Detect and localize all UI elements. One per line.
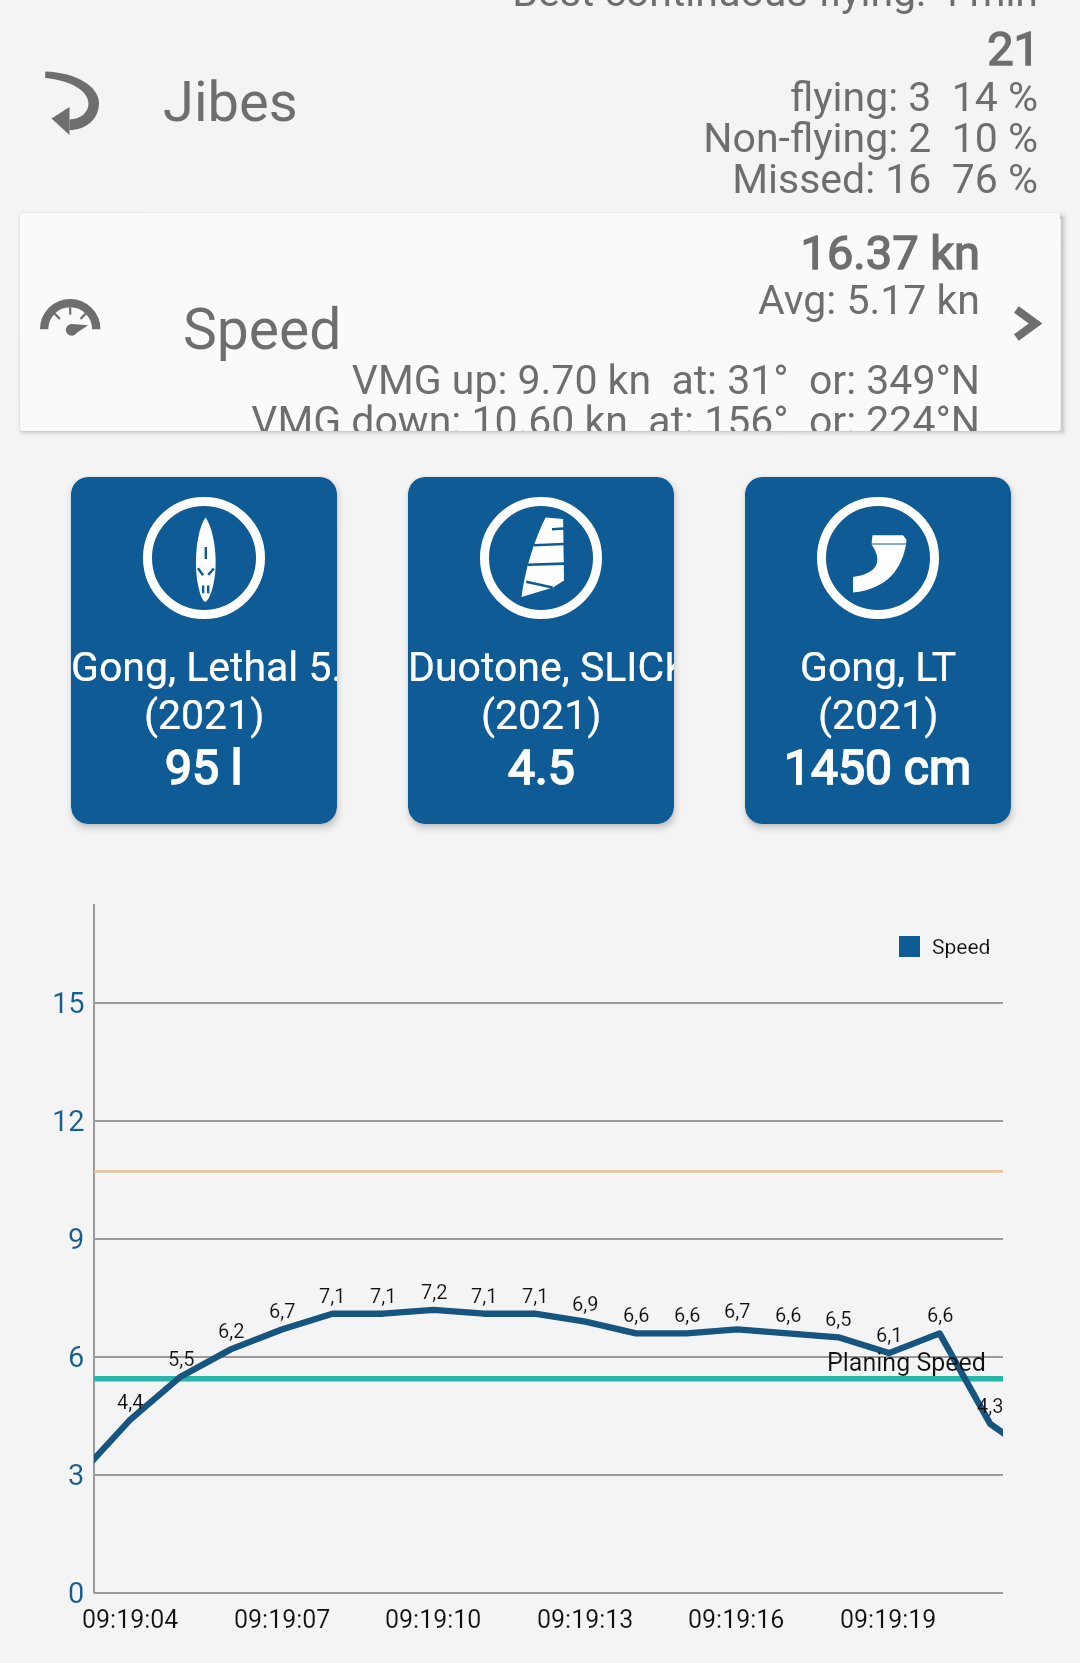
- staticText: VMG up: 9.70 kn at: 31° or: 349°N: [20, 356, 980, 404]
- button[interactable]: Duotone, SLICK: [408, 477, 674, 824]
- staticText: Best continuous flying: 4 min: [0, 0, 1038, 16]
- staticText: 7,1: [522, 1284, 549, 1307]
- staticText: 15: [52, 986, 85, 1020]
- staticText: 95 l: [165, 739, 243, 795]
- staticText: 4,3: [977, 1394, 1004, 1417]
- staticText: 6,6: [927, 1303, 954, 1326]
- staticText: Gong, LT: [800, 643, 957, 691]
- staticText: Speed: [183, 296, 342, 363]
- staticText: 3: [68, 1458, 85, 1492]
- staticText: 09:19:19: [840, 1605, 937, 1634]
- staticText: 5,5: [168, 1347, 195, 1370]
- staticText: 12: [52, 1104, 85, 1138]
- staticText: flying: 3 14 %: [0, 73, 1038, 121]
- button[interactable]: Speed: [20, 213, 1060, 431]
- staticText: 6,6: [623, 1303, 650, 1326]
- staticText: 6,7: [724, 1299, 751, 1322]
- staticText: Jibes: [163, 69, 298, 135]
- staticText: 0: [68, 1576, 85, 1610]
- staticText: (2021): [818, 691, 939, 739]
- staticText: 4.5: [508, 739, 575, 795]
- staticText: 6,5: [825, 1307, 852, 1330]
- staticText: Gong, Lethal 5.1: [71, 643, 337, 691]
- button[interactable]: Best continuous flying: 4 min: [0, 0, 1080, 205]
- staticText: Planing Speed: [827, 1348, 986, 1377]
- staticText: 7,1: [370, 1284, 397, 1307]
- staticText: 6,6: [674, 1303, 701, 1326]
- staticText: VMG down: 10.60 kn at: 156° or: 224°N: [20, 397, 980, 431]
- staticText: 9: [68, 1222, 85, 1256]
- staticText: Missed: 16 76 %: [0, 155, 1038, 203]
- staticText: 6,9: [572, 1292, 599, 1315]
- staticText: 6: [68, 1340, 85, 1374]
- other: Jibes: [45, 70, 99, 135]
- staticText: 09:19:07: [234, 1605, 331, 1634]
- staticText: 6,6: [775, 1303, 802, 1326]
- staticText: 09:19:10: [385, 1605, 482, 1634]
- staticText: Duotone, SLICK: [408, 643, 674, 691]
- staticText: 6,7: [269, 1299, 296, 1322]
- staticText: Speed: [932, 935, 991, 960]
- staticText: Avg: 5.17 kn: [20, 276, 980, 324]
- staticText: 09:19:13: [537, 1605, 634, 1634]
- button[interactable]: Gong, LT: [745, 477, 1011, 824]
- staticText: 1450 cm: [784, 739, 972, 795]
- staticText: 7,2: [421, 1280, 448, 1303]
- staticText: 6,2: [218, 1319, 245, 1342]
- staticText: 6,1: [876, 1323, 903, 1346]
- staticText: 16.37 kn: [20, 225, 980, 280]
- staticText: Non-flying: 2 10 %: [0, 114, 1038, 162]
- staticText: 21: [0, 21, 1040, 76]
- staticText: (2021): [481, 691, 602, 739]
- button[interactable]: Gong, Lethal 5.1: [71, 477, 337, 824]
- staticText: (2021): [144, 691, 265, 739]
- staticText: 4,4: [117, 1390, 144, 1413]
- other: Open speed details: [1013, 306, 1039, 341]
- staticText: 7,1: [319, 1284, 346, 1307]
- staticText: 09:19:16: [688, 1605, 785, 1634]
- staticText: 7,1: [471, 1284, 498, 1307]
- staticText: 09:19:04: [82, 1605, 179, 1634]
